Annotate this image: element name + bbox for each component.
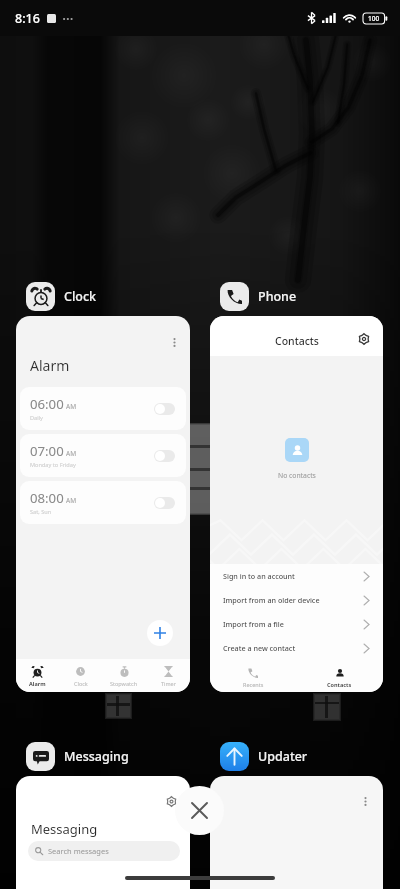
staticText: Alarm: [29, 680, 46, 687]
button[interactable]: 08:00: [20, 481, 186, 524]
button[interactable]: Updater: [210, 737, 308, 775]
button[interactable]: Contacts: [296, 660, 383, 692]
staticText: 100: [368, 14, 380, 23]
button[interactable]: Toggle alarm: [154, 450, 175, 462]
staticText: Import from an older device: [223, 595, 320, 605]
staticText: Monday to Friday: [30, 461, 76, 469]
staticText: Clock: [74, 680, 88, 687]
staticText: AM: [66, 449, 77, 458]
staticText: Stopwatch: [110, 680, 138, 687]
staticText: 06:00: [30, 395, 64, 413]
staticText: Daily: [30, 414, 43, 422]
button[interactable]: 06:00: [20, 387, 186, 430]
button[interactable]: Recents: [210, 660, 296, 692]
staticText: Updater: [258, 748, 308, 765]
button[interactable]: Messaging: [16, 737, 129, 775]
staticText: Sat, Sun: [30, 508, 52, 516]
button[interactable]: Timer: [146, 659, 190, 692]
button[interactable]: Close all: [175, 786, 224, 835]
button[interactable]: Toggle alarm: [154, 403, 175, 415]
button[interactable]: 07:00: [20, 434, 186, 477]
staticText: Messaging: [31, 820, 98, 838]
staticText: 07:00: [30, 442, 64, 460]
staticText: Sign in to an account: [223, 571, 295, 581]
staticText: No contacts: [278, 471, 316, 480]
staticText: Messaging: [64, 748, 129, 765]
button[interactable]: Sign in to an account: [210, 564, 383, 588]
staticText: Create a new contact: [223, 643, 296, 653]
staticText: Alarm: [30, 356, 70, 375]
button[interactable]: Create a new contact: [210, 636, 383, 660]
button[interactable]: Toggle alarm: [154, 497, 175, 509]
button[interactable]: Import from an older device: [210, 588, 383, 612]
button[interactable]: Settings: [356, 331, 372, 347]
staticText: Contacts: [327, 681, 352, 688]
staticText: Clock: [64, 288, 97, 305]
staticText: Import from a file: [223, 619, 284, 629]
button[interactable]: Settings: [164, 794, 178, 808]
button[interactable]: Add alarm: [147, 620, 173, 646]
staticText: AM: [66, 402, 77, 411]
button[interactable]: Stopwatch: [102, 659, 146, 692]
staticText: Recents: [243, 681, 264, 688]
staticText: Search messages: [48, 846, 109, 856]
button[interactable]: Clock: [16, 277, 97, 315]
staticText: 08:00: [30, 489, 64, 507]
button[interactable]: Phone: [210, 277, 297, 315]
button[interactable]: Search messages: [28, 841, 180, 861]
button[interactable]: Import from a file: [210, 612, 383, 636]
staticText: 8:16: [15, 10, 40, 27]
button[interactable]: Alarm: [16, 659, 59, 692]
staticText: AM: [66, 496, 77, 505]
staticText: Phone: [258, 288, 297, 305]
button[interactable]: Clock: [59, 659, 102, 692]
staticText: Timer: [161, 680, 176, 687]
staticText: Contacts: [275, 334, 319, 348]
